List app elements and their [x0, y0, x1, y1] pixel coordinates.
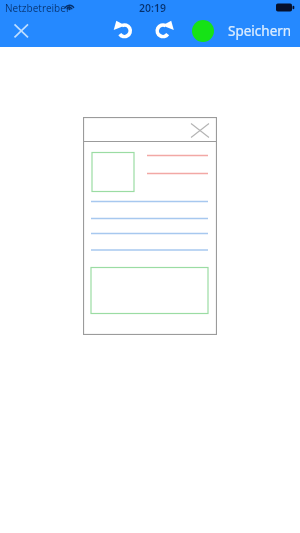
button[interactable]: Close: [7, 17, 35, 45]
button[interactable]: Speichern: [192, 15, 292, 47]
staticText: Speichern: [228, 22, 292, 40]
staticText: 20:19: [139, 1, 166, 15]
staticText: Netzbetreiber: [5, 1, 71, 15]
button[interactable]: Redo: [150, 17, 178, 45]
button[interactable]: Undo: [110, 17, 138, 45]
